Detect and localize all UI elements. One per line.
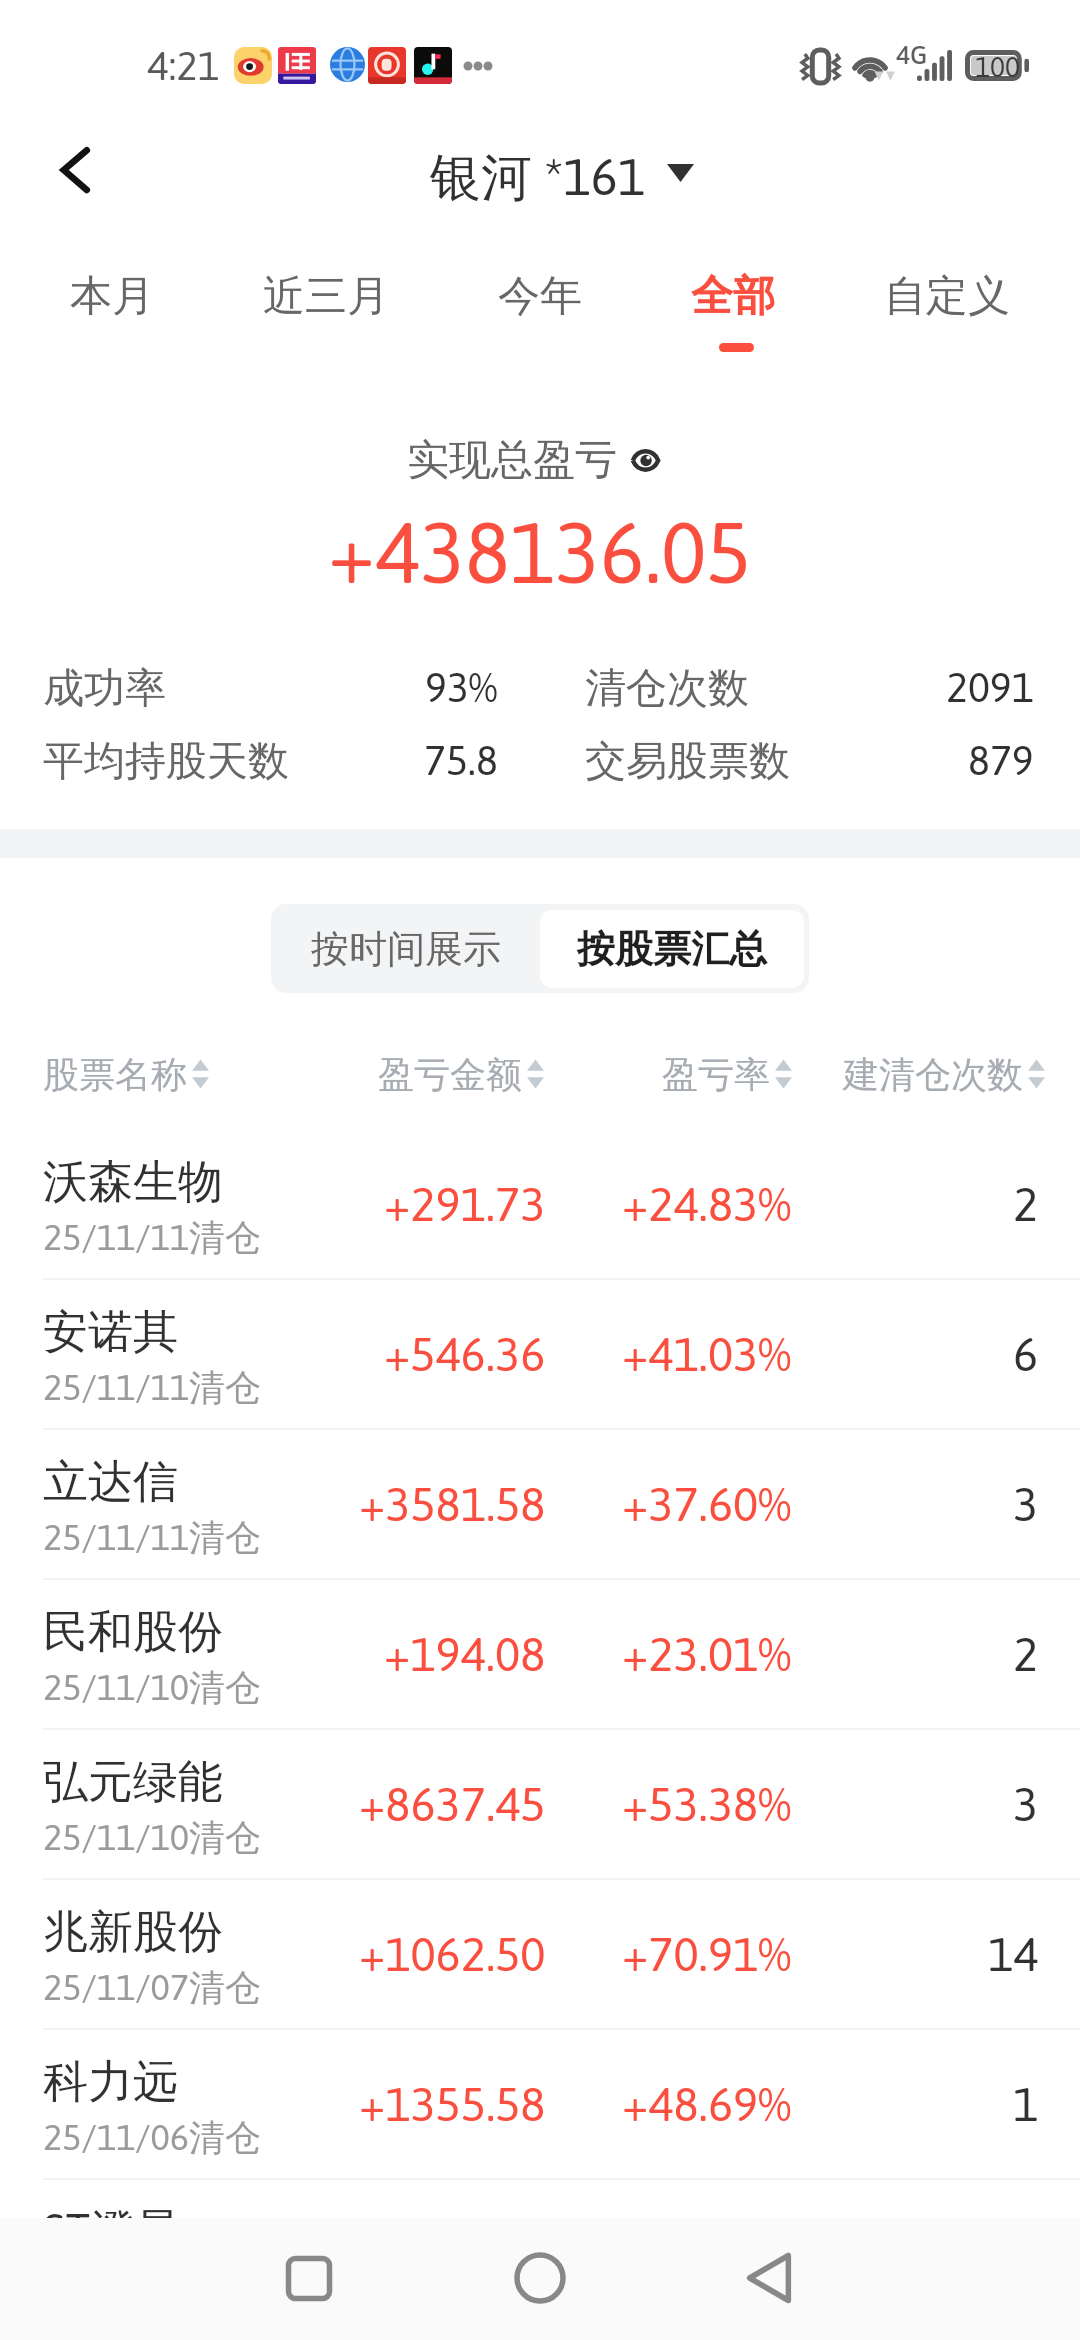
staticText: 3 [1013, 1777, 1039, 1831]
staticText: 2 [1013, 1177, 1039, 1231]
staticText: 平均持股天数 [43, 736, 289, 784]
button[interactable]: 按股票汇总 [540, 904, 809, 993]
button[interactable]: 立达信 [0, 1429, 1080, 1579]
staticText: 股票名称 [43, 1052, 187, 1097]
staticText: 879 [968, 737, 1034, 784]
staticText: +1355.58 [359, 2077, 546, 2131]
button[interactable]: ST澄星 [0, 2179, 1080, 2259]
staticText: 立达信 [43, 1454, 178, 1511]
button[interactable]: 兆新股份 [0, 1879, 1080, 2029]
staticText: 4G [896, 40, 928, 70]
staticText: +546.36 [384, 1327, 546, 1381]
staticText: +41.03% [622, 1327, 792, 1381]
staticText: +3581.58 [359, 1477, 546, 1531]
staticText: 兆新股份 [43, 1904, 223, 1961]
button[interactable]: 科力远 [0, 2029, 1080, 2179]
staticText: 今年 [498, 270, 582, 323]
staticText: 民和股份 [43, 1604, 223, 1661]
staticText: +23.01% [622, 1627, 792, 1681]
staticText: 沃森生物 [43, 1154, 223, 1211]
button[interactable]: Recents [277, 2246, 341, 2310]
staticText: 安诺其 [43, 1304, 178, 1361]
staticText: 全部 [691, 270, 775, 323]
staticText: 弘元绿能 [43, 1754, 223, 1811]
staticText: 按时间展示 [311, 925, 501, 973]
staticText: +438136.05 [328, 505, 752, 601]
staticText: 银河 *161 [430, 146, 646, 210]
button[interactable]: 近三月 [263, 270, 389, 360]
button[interactable]: 安诺其 [0, 1279, 1080, 1429]
staticText: 100 [975, 51, 1020, 83]
staticText: 25/11/11清仓 [43, 1215, 261, 1260]
staticText: +8637.45 [359, 1777, 546, 1831]
button[interactable]: Back [40, 133, 112, 205]
button[interactable]: Home [508, 2246, 572, 2310]
staticText: 建清仓次数 [843, 1052, 1023, 1097]
staticText: 交易股票数 [585, 736, 790, 784]
button[interactable]: 全部 [691, 270, 775, 360]
staticText: 清仓次数 [585, 663, 749, 711]
button[interactable]: 今年 [498, 270, 582, 360]
staticText: 25/11/07清仓 [43, 1965, 261, 2010]
staticText: 2091 [946, 664, 1034, 711]
staticText: 近三月 [263, 270, 389, 323]
button[interactable]: 建清仓次数 [843, 1046, 1045, 1102]
staticText: +37.60% [622, 1477, 792, 1531]
button[interactable]: 弘元绿能 [0, 1729, 1080, 1879]
staticText: 75.8 [424, 737, 498, 784]
staticText: 3 [1013, 1477, 1039, 1531]
staticText: 成功率 [43, 663, 166, 711]
staticText: 6 [1013, 1327, 1039, 1381]
staticText: 93% [425, 664, 498, 711]
staticText: 盈亏金额 [378, 1052, 522, 1097]
button[interactable]: 银河 *161 [430, 146, 694, 210]
button[interactable]: 股票名称 [43, 1046, 209, 1102]
staticText: 自定义 [884, 270, 1010, 323]
staticText: 科力远 [43, 2054, 178, 2111]
staticText: +70.91% [622, 1927, 792, 1981]
staticText: 1 [1013, 2077, 1039, 2131]
staticText: 盈亏率 [662, 1052, 770, 1097]
staticText: +291.73 [384, 1177, 546, 1231]
button[interactable]: 自定义 [884, 270, 1010, 360]
button[interactable]: 民和股份 [0, 1579, 1080, 1729]
button[interactable]: 本月 [70, 270, 154, 360]
staticText: 25/11/11清仓 [43, 1365, 261, 1410]
button[interactable]: 按时间展示 [271, 904, 540, 993]
staticText: 4:21 [147, 43, 220, 89]
staticText: +1062.50 [359, 1927, 546, 1981]
staticText: 按股票汇总 [577, 925, 767, 973]
staticText: 2 [1013, 1627, 1039, 1681]
staticText: 25/11/10清仓 [43, 1665, 261, 1710]
staticText: +24.83% [622, 1177, 792, 1231]
staticText: 本月 [70, 270, 154, 323]
staticText: +53.38% [622, 1777, 792, 1831]
staticText: ST澄星 [43, 2203, 181, 2260]
button[interactable]: 盈亏率 [662, 1046, 792, 1102]
staticText: 实现总盈亏 [407, 434, 617, 487]
button[interactable]: Back [737, 2246, 801, 2310]
staticText: 14 [988, 1927, 1039, 1981]
staticText: 25/11/11清仓 [43, 1515, 261, 1560]
button[interactable]: 实现总盈亏 [407, 434, 659, 487]
staticText: 25/11/06清仓 [43, 2115, 261, 2160]
staticText: +48.69% [622, 2077, 792, 2131]
staticText: 25/11/10清仓 [43, 1815, 261, 1860]
button[interactable]: 盈亏金额 [378, 1046, 544, 1102]
staticText: +194.08 [384, 1627, 546, 1681]
button[interactable]: 沃森生物 [0, 1129, 1080, 1279]
